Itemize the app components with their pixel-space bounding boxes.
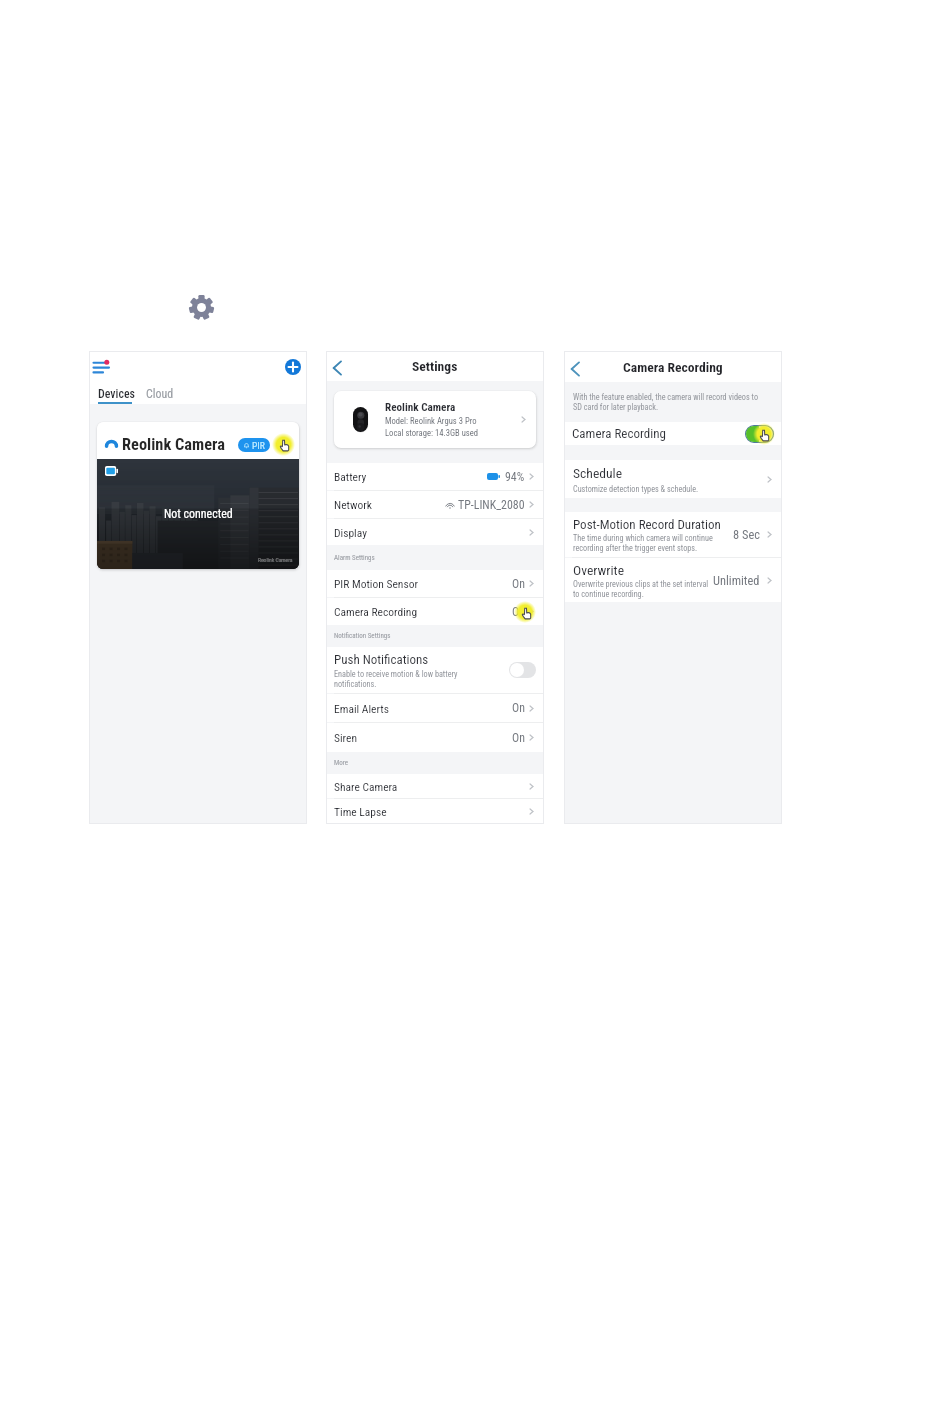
staticText: PIR Motion Sensor: [334, 577, 418, 590]
staticText: Network: [334, 498, 372, 511]
button[interactable]: Reolink Camera: [334, 391, 536, 448]
staticText: Enable to receive motion & low battery n…: [334, 669, 474, 689]
staticText: Siren: [334, 731, 357, 744]
staticText: With the feature enabled, the camera wil…: [573, 392, 765, 412]
button[interactable]: PIR Motion Sensor: [326, 570, 544, 597]
staticText: Unlimited: [713, 573, 760, 588]
staticText: Overwrite previous clips at the set inte…: [573, 579, 714, 599]
staticText: The time during which camera will contin…: [573, 533, 721, 553]
staticText: Reolink Camera: [258, 557, 293, 564]
button[interactable]: Post-Motion Record Duration: [564, 512, 782, 557]
button[interactable]: Devices: [98, 387, 135, 401]
staticText: Camera Recording: [572, 426, 666, 441]
button[interactable]: Settings: [188, 294, 215, 321]
button[interactable]: Reolink Camera: [97, 422, 299, 569]
button[interactable]: Camera recording toggle, on: [745, 425, 774, 443]
staticText: Display: [334, 526, 367, 539]
staticText: Settings: [412, 358, 458, 374]
button[interactable]: Battery: [326, 463, 544, 490]
button[interactable]: Schedule: [564, 460, 782, 498]
button[interactable]: Overwrite: [564, 558, 782, 602]
staticText: Model: Reolink Argus 3 Pro: [385, 416, 477, 426]
button[interactable]: Back: [567, 359, 587, 379]
staticText: TP-LINK_2080: [458, 498, 525, 512]
staticText: 8 Sec: [733, 527, 760, 542]
staticText: Camera Recording: [334, 605, 418, 618]
staticText: Not connected: [164, 507, 233, 521]
staticText: PIR: [252, 440, 265, 451]
button[interactable]: Display: [326, 519, 544, 545]
staticText: Overwrite: [573, 562, 625, 578]
button[interactable]: Push Notifications: [326, 647, 544, 693]
staticText: Post-Motion Record Duration: [573, 517, 721, 532]
staticText: Reolink Camera: [122, 435, 225, 454]
staticText: Share Camera: [334, 780, 398, 793]
button[interactable]: Share Camera: [326, 774, 544, 798]
button[interactable]: Siren: [326, 723, 544, 752]
button[interactable]: Add device: [285, 359, 301, 375]
staticText: Reolink Camera: [385, 401, 456, 414]
button[interactable]: Menu: [92, 360, 114, 382]
staticText: Notification Settings: [334, 632, 391, 640]
staticText: Devices: [98, 387, 135, 401]
button[interactable]: Camera Recording: [564, 422, 782, 445]
staticText: Alarm Settings: [334, 554, 375, 562]
staticText: On: [512, 701, 525, 715]
button[interactable]: Back: [329, 358, 349, 378]
staticText: Time Lapse: [334, 805, 387, 818]
staticText: On: [512, 577, 525, 591]
staticText: On: [512, 605, 525, 619]
staticText: Schedule: [573, 465, 623, 481]
staticText: Customize detection types & schedule.: [573, 484, 699, 494]
button[interactable]: Cloud: [146, 387, 174, 401]
button[interactable]: Email Alerts: [326, 694, 544, 722]
button[interactable]: Push notifications toggle, off: [509, 662, 536, 678]
staticText: Local storage: 14.3GB used: [385, 428, 479, 438]
staticText: On: [512, 731, 525, 745]
staticText: More: [334, 759, 349, 767]
staticText: Push Notifications: [334, 652, 429, 667]
staticText: 94%: [505, 470, 525, 484]
button[interactable]: Camera Recording: [326, 598, 544, 625]
staticText: Battery: [334, 470, 367, 483]
staticText: Camera Recording: [623, 359, 723, 375]
staticText: Email Alerts: [334, 702, 389, 715]
staticText: Cloud: [146, 387, 174, 401]
button[interactable]: Time Lapse: [326, 799, 544, 824]
button[interactable]: Network: [326, 491, 544, 518]
